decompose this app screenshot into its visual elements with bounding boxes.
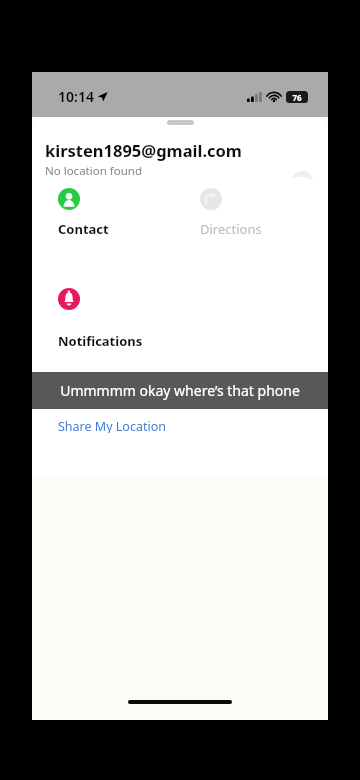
button[interactable]: Share My Location bbox=[45, 411, 315, 433]
staticText: kirsten1895@gmail.com bbox=[45, 139, 242, 161]
staticText: Contact bbox=[58, 220, 109, 238]
staticText: Notifications bbox=[58, 332, 143, 350]
staticText: Directions bbox=[200, 220, 262, 238]
staticText: 10:14 bbox=[58, 87, 94, 106]
button[interactable]: Contact bbox=[45, 177, 172, 262]
staticText: Ummmmm okay where’s that phone bbox=[60, 381, 300, 400]
button[interactable]: Close bbox=[291, 171, 313, 193]
staticText: 76 bbox=[292, 92, 302, 103]
button[interactable]: Directions bbox=[187, 177, 315, 262]
staticText: Share My Location bbox=[58, 418, 166, 433]
staticText: Add bbox=[58, 381, 82, 398]
staticText: No location found bbox=[45, 163, 142, 179]
button[interactable]: Add bbox=[45, 374, 315, 408]
